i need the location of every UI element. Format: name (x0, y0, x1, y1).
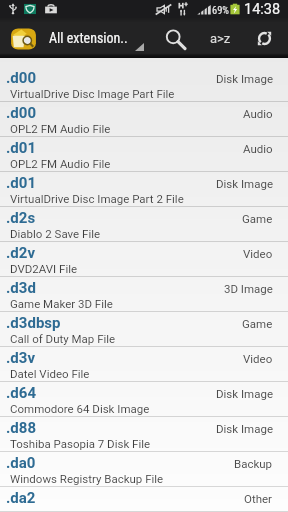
staticText: Toshiba Pasopia 7 Disk File (10, 437, 151, 450)
staticText: .d00 (6, 104, 37, 122)
button[interactable]: .d00 (0, 67, 288, 102)
staticText: Datel Video File (10, 367, 90, 380)
staticText: Video (243, 247, 273, 260)
staticText: .d01 (6, 139, 37, 157)
staticText: Game Maker 3D File (10, 297, 113, 310)
staticText: VirtualDrive Disc Image Part File (10, 87, 175, 100)
button[interactable]: .d3d (0, 277, 288, 312)
staticText: All extension.. (49, 30, 128, 46)
staticText: VirtualDrive Disc Image Part 2 File (10, 192, 184, 205)
staticText: Game (242, 317, 273, 330)
staticText: Disk Image (216, 177, 273, 190)
staticText: .da0 (6, 454, 36, 472)
staticText: .d3d (6, 279, 36, 297)
staticText: .d64 (6, 384, 37, 402)
staticText: .d3dbsp (6, 314, 61, 332)
button[interactable]: .d2v (0, 242, 288, 277)
staticText: .d88 (6, 419, 37, 437)
staticText: Disk Image (216, 72, 273, 85)
button[interactable]: .d2s (0, 207, 288, 242)
button[interactable]: All extension.. (0, 18, 150, 58)
staticText: .d2s (6, 209, 36, 227)
staticText: OPL2 FM Audio File (10, 122, 111, 135)
staticText: 3D Image (224, 282, 273, 295)
staticText: .d01 (6, 174, 37, 192)
button[interactable]: .d3dbsp (0, 312, 288, 347)
staticText: 69% (212, 4, 230, 16)
button[interactable]: Sort alphabetically (198, 18, 242, 58)
staticText: Windows Registry Backup File (10, 472, 164, 485)
button[interactable]: .d64 (0, 382, 288, 417)
staticText: 14:38 (244, 1, 281, 18)
button[interactable]: .d88 (0, 417, 288, 452)
staticText: OPL2 FM Audio File (10, 157, 111, 170)
staticText: Call of Duty Map File (10, 332, 116, 345)
staticText: Diablo 2 Save File (10, 227, 101, 240)
staticText: Commodore 64 Disk Image (10, 402, 150, 415)
button[interactable]: Search (154, 18, 198, 58)
staticText: Other (244, 492, 273, 505)
staticText: Backup (234, 457, 273, 470)
staticText: Video (243, 352, 273, 365)
button[interactable]: .da2 (0, 487, 288, 512)
button[interactable]: .da0 (0, 452, 288, 487)
staticText: .da2 (6, 489, 36, 507)
staticText: .d2v (6, 244, 36, 262)
staticText: DVD2AVI File (10, 262, 78, 275)
staticText: Disk Image (216, 422, 273, 435)
staticText: a>z (210, 31, 231, 46)
staticText: Game (242, 212, 273, 225)
staticText: .d3v (6, 349, 36, 367)
button[interactable]: Refresh (242, 18, 286, 58)
button[interactable]: .d01 (0, 172, 288, 207)
staticText: Audio (243, 107, 273, 120)
button[interactable]: .d3v (0, 347, 288, 382)
button[interactable]: .d01 (0, 137, 288, 172)
staticText: Audio (243, 142, 273, 155)
staticText: Disk Image (216, 387, 273, 400)
button[interactable]: .d00 (0, 102, 288, 137)
staticText: .d00 (6, 69, 37, 87)
